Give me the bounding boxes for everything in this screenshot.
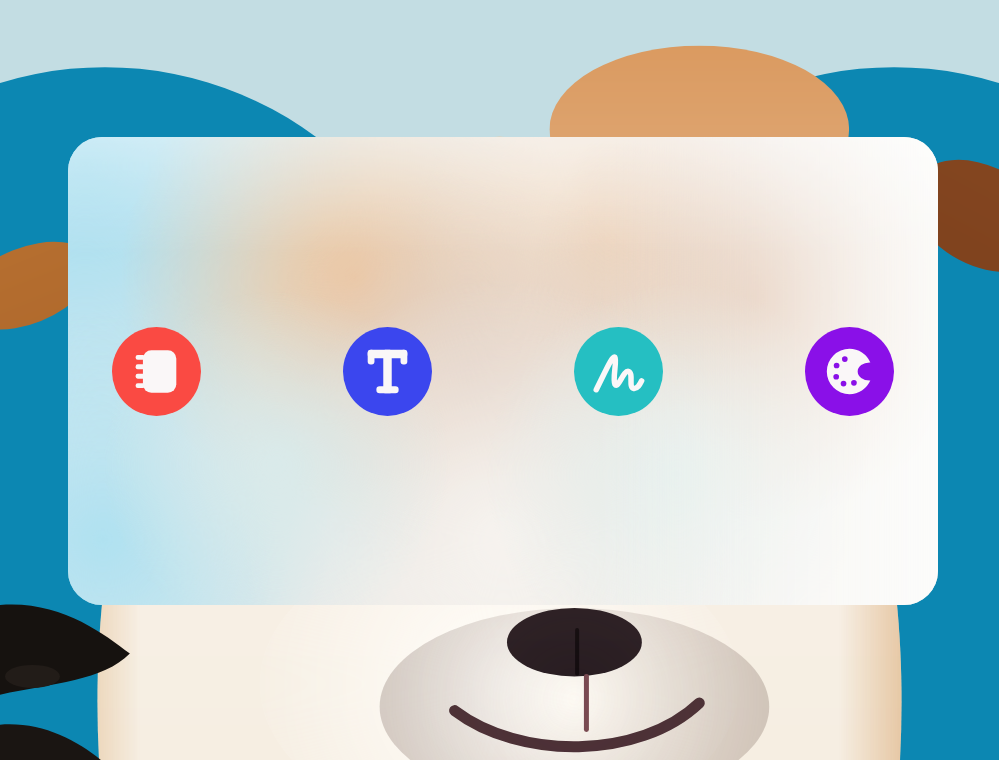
button[interactable]: Draw xyxy=(574,327,663,416)
button[interactable]: Notes xyxy=(112,327,201,416)
button[interactable]: Text xyxy=(343,327,432,416)
button[interactable]: Colors xyxy=(805,327,894,416)
